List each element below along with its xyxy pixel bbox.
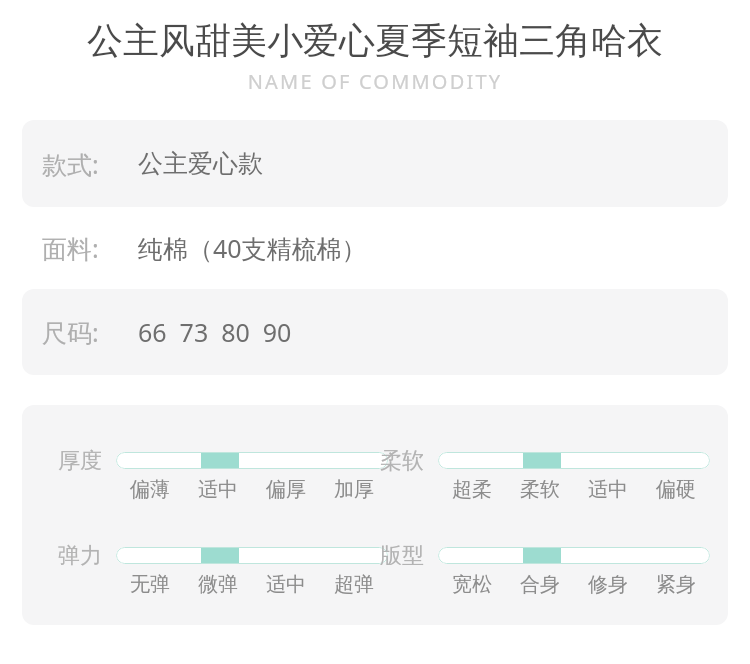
staticText: 款式: xyxy=(42,147,99,181)
staticText: 适中 xyxy=(198,477,238,502)
staticText: 柔软 xyxy=(520,477,560,502)
staticText: 纯棉（40支精梳棉） xyxy=(138,231,367,265)
staticText: 偏厚 xyxy=(266,477,306,502)
staticText: 尺码: xyxy=(42,315,99,349)
button[interactable]: 款式: xyxy=(22,120,728,207)
staticText: 紧身 xyxy=(656,572,696,597)
button[interactable]: 面料: xyxy=(22,207,728,289)
button[interactable]: 柔软 xyxy=(380,447,714,509)
staticText: 柔软 xyxy=(380,447,424,473)
staticText: NAME OF COMMODITY xyxy=(0,68,750,95)
staticText: 版型 xyxy=(380,542,424,568)
staticText: 适中 xyxy=(266,572,306,597)
staticText: 修身 xyxy=(588,572,628,597)
button[interactable]: 版型 xyxy=(380,542,714,604)
staticText: 66 73 80 90 xyxy=(138,315,292,349)
staticText: 公主爱心款 xyxy=(138,148,263,179)
staticText: 厚度 xyxy=(58,447,102,473)
staticText: 超弹 xyxy=(334,572,374,597)
staticText: 偏薄 xyxy=(130,477,170,502)
staticText: 加厚 xyxy=(334,477,374,502)
button[interactable]: 尺码: xyxy=(22,289,728,375)
staticText: 无弹 xyxy=(130,572,170,597)
staticText: 合身 xyxy=(520,572,560,597)
staticText: 偏硬 xyxy=(656,477,696,502)
staticText: 弹力 xyxy=(58,542,102,568)
staticText: 面料: xyxy=(42,231,99,265)
button[interactable]: 弹力 xyxy=(58,542,392,604)
staticText: 公主风甜美小爱心夏季短袖三角哈衣 xyxy=(0,18,750,63)
staticText: 适中 xyxy=(588,477,628,502)
button[interactable]: 厚度 xyxy=(58,447,392,509)
staticText: 超柔 xyxy=(452,477,492,502)
staticText: 微弹 xyxy=(198,572,238,597)
staticText: 宽松 xyxy=(452,572,492,597)
